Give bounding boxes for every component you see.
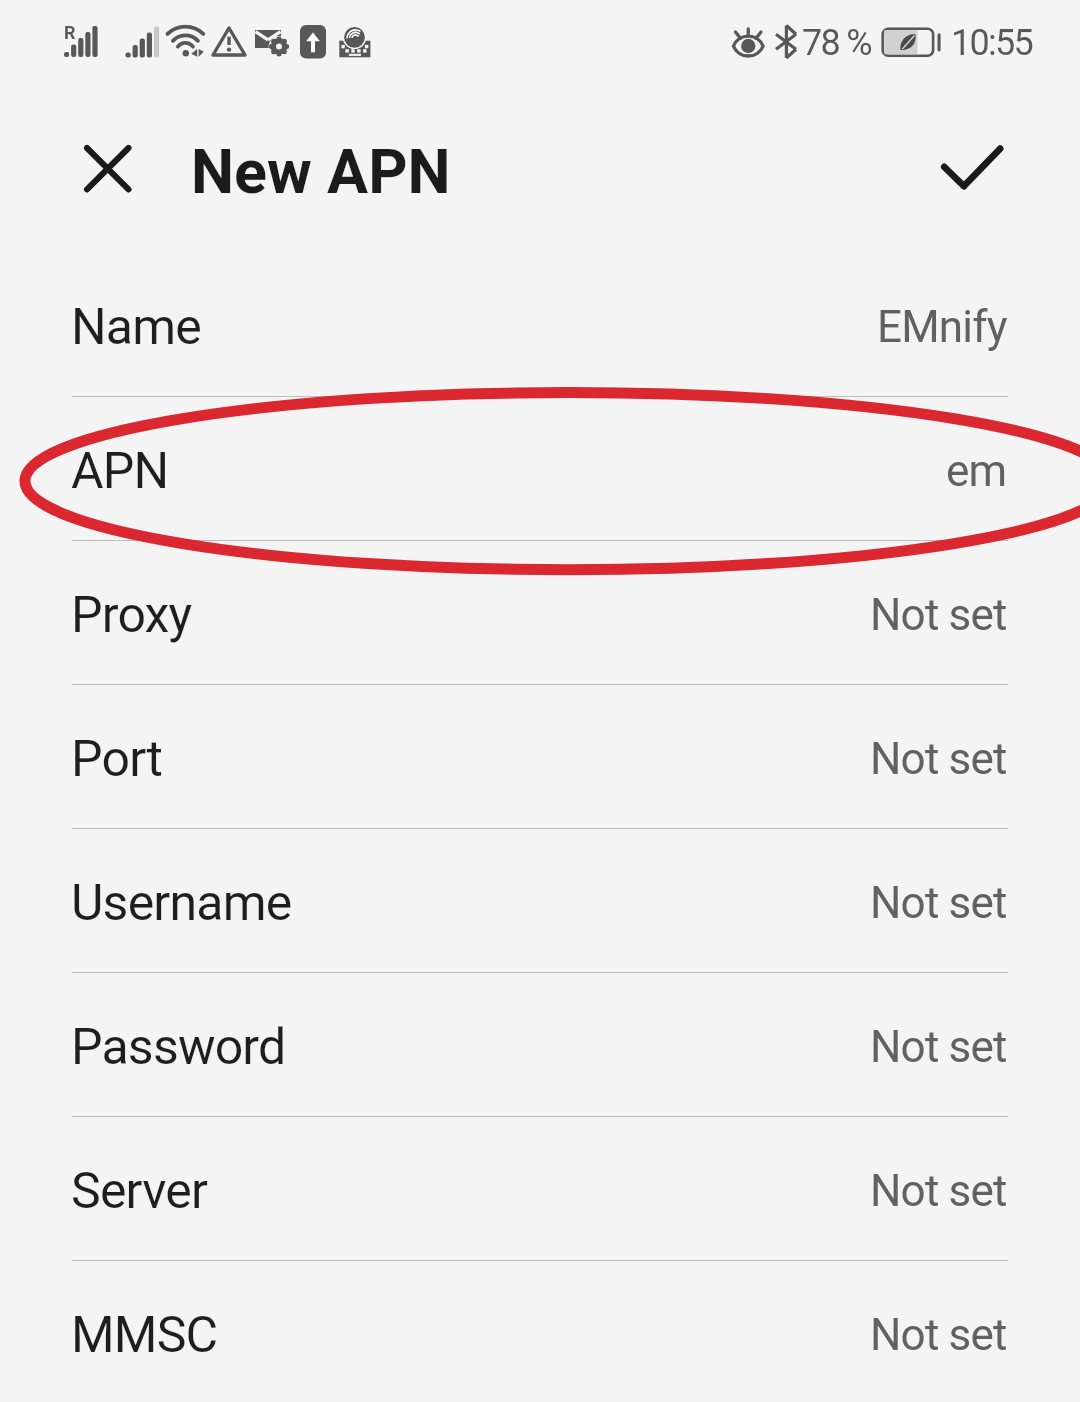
staticText: Username bbox=[71, 874, 292, 933]
staticText: New APN bbox=[191, 136, 451, 207]
staticText: R bbox=[64, 22, 76, 43]
button[interactable]: Proxy bbox=[0, 541, 1080, 684]
staticText: MMSC bbox=[71, 1306, 218, 1365]
staticText: Not set bbox=[870, 877, 1007, 929]
staticText: APN bbox=[71, 442, 169, 501]
staticText: Server bbox=[71, 1162, 208, 1221]
button[interactable]: Name bbox=[0, 253, 1080, 396]
button[interactable]: Port bbox=[0, 685, 1080, 828]
staticText: Name bbox=[71, 298, 202, 357]
button[interactable]: APN bbox=[0, 397, 1080, 540]
button[interactable]: Close bbox=[64, 125, 152, 213]
button[interactable]: Save bbox=[920, 125, 1020, 225]
staticText: Not set bbox=[870, 733, 1007, 785]
button[interactable]: Password bbox=[0, 973, 1080, 1116]
staticText: Password bbox=[71, 1018, 286, 1077]
staticText: Not set bbox=[870, 589, 1007, 641]
staticText: em bbox=[946, 445, 1007, 497]
staticText: Port bbox=[71, 730, 163, 789]
staticText: 10:55 bbox=[951, 22, 1033, 64]
staticText: Not set bbox=[870, 1309, 1007, 1361]
staticText: EMnify bbox=[877, 301, 1007, 353]
button[interactable]: Server bbox=[0, 1117, 1080, 1260]
staticText: Proxy bbox=[71, 586, 192, 645]
staticText: 78 % bbox=[802, 22, 871, 64]
staticText: Not set bbox=[870, 1021, 1007, 1073]
button[interactable]: MMSC bbox=[0, 1261, 1080, 1402]
button[interactable]: Username bbox=[0, 829, 1080, 972]
staticText: Not set bbox=[870, 1165, 1007, 1217]
